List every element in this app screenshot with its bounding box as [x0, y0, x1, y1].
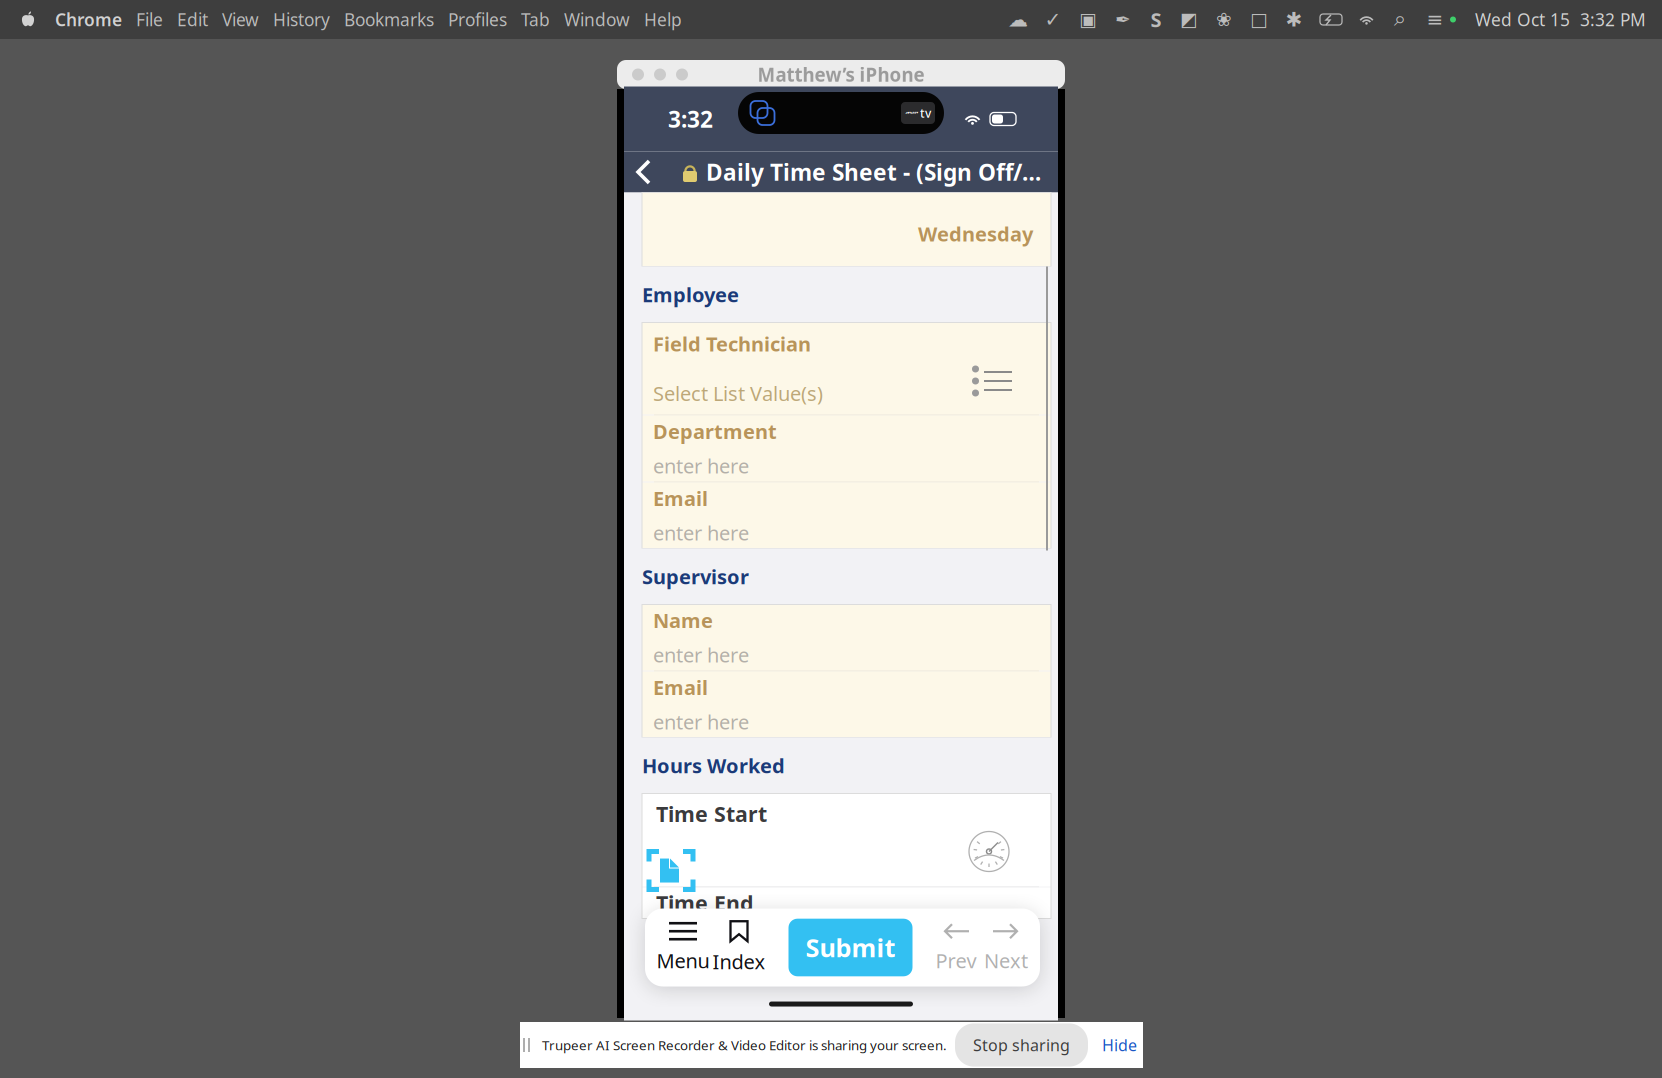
staticText: enter here: [653, 708, 749, 735]
button[interactable]: Bookmarks: [337, 0, 441, 39]
staticText: Hours Worked: [642, 752, 785, 779]
staticText: ▣: [1079, 9, 1097, 30]
button[interactable]: Field Technician: [642, 322, 1051, 414]
button[interactable]: Edit: [170, 0, 215, 39]
button[interactable]: Menu: [657, 922, 709, 972]
staticText: Tab: [521, 8, 550, 31]
button[interactable]: Window: [557, 0, 637, 39]
button[interactable]: Email: [642, 482, 1051, 548]
button[interactable]: Stop sharing: [955, 1023, 1088, 1067]
staticText: ☁: [1008, 8, 1028, 31]
staticText: Help: [644, 8, 682, 31]
staticText: Email: [653, 674, 708, 700]
staticText: Time End: [656, 889, 753, 917]
button[interactable]: Submit: [788, 919, 912, 976]
staticText: Chrome: [55, 8, 122, 31]
staticText: Wed Oct 15 3:32 PM: [1475, 8, 1646, 31]
button[interactable]: Hide: [1088, 1034, 1151, 1056]
button[interactable]: Prev: [936, 922, 976, 972]
staticText: S: [1150, 6, 1161, 33]
staticText: ✱: [1285, 8, 1302, 31]
button[interactable]: Email: [642, 671, 1051, 737]
button[interactable]: Chrome: [48, 0, 129, 39]
staticText: Department: [653, 418, 777, 444]
button[interactable]: History: [266, 0, 337, 39]
button[interactable]: Profiles: [441, 0, 514, 39]
staticText: Email: [653, 485, 708, 511]
button[interactable]: Next: [986, 922, 1026, 972]
staticText: View: [222, 8, 259, 31]
staticText: Next: [984, 947, 1028, 974]
staticText: Window: [564, 8, 630, 31]
button[interactable]: File: [129, 0, 170, 39]
staticText: enter here: [653, 641, 749, 668]
staticText: Edit: [177, 8, 208, 31]
staticText: Index: [712, 948, 765, 975]
staticText: Stop sharing: [973, 1034, 1070, 1056]
staticText: □: [1250, 9, 1268, 30]
staticText: 3:32: [668, 104, 713, 134]
staticText: ✒: [1115, 9, 1131, 30]
button[interactable]: Back: [624, 151, 661, 192]
staticText: Bookmarks: [344, 8, 434, 31]
staticText: Field Technician: [653, 330, 811, 357]
staticText: enter here: [653, 519, 749, 546]
staticText: Supervisor: [642, 563, 749, 590]
button[interactable]: Index: [713, 922, 765, 972]
staticText: ≡: [1426, 8, 1443, 31]
staticText: Time Start: [656, 799, 767, 828]
staticText: Daily Time Sheet - (Sign Off/A...: [706, 157, 1042, 187]
button[interactable]: Department: [642, 415, 1051, 481]
staticText: tv: [920, 105, 931, 121]
staticText: Matthew’s iPhone: [757, 62, 924, 87]
staticText: enter here: [653, 452, 749, 479]
staticText: Hide: [1102, 1034, 1137, 1056]
staticText: Employee: [642, 281, 739, 308]
staticText: Submit: [805, 931, 895, 964]
button[interactable]: Help: [637, 0, 689, 39]
staticText: : [905, 106, 919, 119]
staticText: ◩: [1180, 9, 1198, 30]
staticText: ❀: [1216, 9, 1232, 30]
staticText: History: [273, 8, 330, 31]
button[interactable]: Tab: [514, 0, 557, 39]
staticText: Wednesday: [918, 220, 1033, 247]
staticText: Select List Value(s): [653, 380, 823, 406]
staticText: ✓: [1044, 8, 1061, 31]
staticText: Trupeer AI Screen Recorder & Video Edito…: [542, 1036, 947, 1054]
staticText: Profiles: [448, 8, 507, 31]
button[interactable]: Apple menu: [0, 0, 48, 39]
staticText: Name: [653, 607, 713, 633]
button[interactable]: View: [215, 0, 266, 39]
staticText: Menu: [656, 947, 709, 974]
button[interactable]: Name: [642, 604, 1051, 670]
staticText: File: [136, 8, 163, 31]
staticText: Prev: [935, 947, 976, 974]
staticText: ⌕: [1394, 9, 1406, 30]
